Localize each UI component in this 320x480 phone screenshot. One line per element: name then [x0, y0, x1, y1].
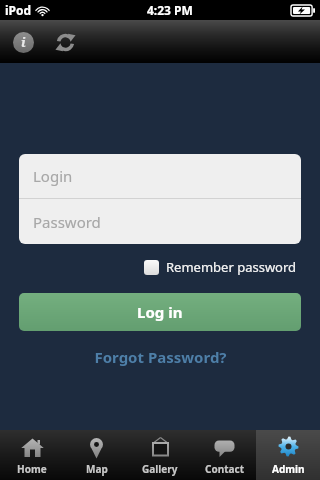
staticText: Home [17, 462, 47, 476]
button[interactable]: Log in [19, 293, 301, 331]
staticText: Gallery [142, 462, 178, 476]
staticText: Contact [205, 462, 244, 476]
staticText: Map [86, 462, 108, 476]
button[interactable]: Gallery [128, 430, 192, 480]
staticText: Password [33, 212, 101, 232]
button[interactable]: Login [19, 154, 301, 198]
button[interactable]: Home [0, 430, 64, 480]
staticText: Remember password [166, 258, 297, 276]
staticText: 4:23 PM [147, 2, 193, 18]
button[interactable]: Password [19, 199, 301, 244]
button[interactable]: Remember password [140, 254, 301, 280]
button[interactable]: Forgot Password? [84, 344, 237, 370]
staticText: iPod [5, 2, 32, 18]
button[interactable]: Admin [256, 430, 320, 480]
staticText: Admin [272, 462, 305, 476]
staticText: Log in [137, 302, 183, 322]
button[interactable]: Info [8, 27, 38, 57]
button[interactable]: Map [64, 430, 128, 480]
staticText: Login [33, 166, 73, 186]
button[interactable]: Refresh [50, 27, 80, 57]
staticText: i [21, 33, 26, 51]
button[interactable]: Contact [192, 430, 256, 480]
staticText: Forgot Password? [94, 347, 227, 367]
